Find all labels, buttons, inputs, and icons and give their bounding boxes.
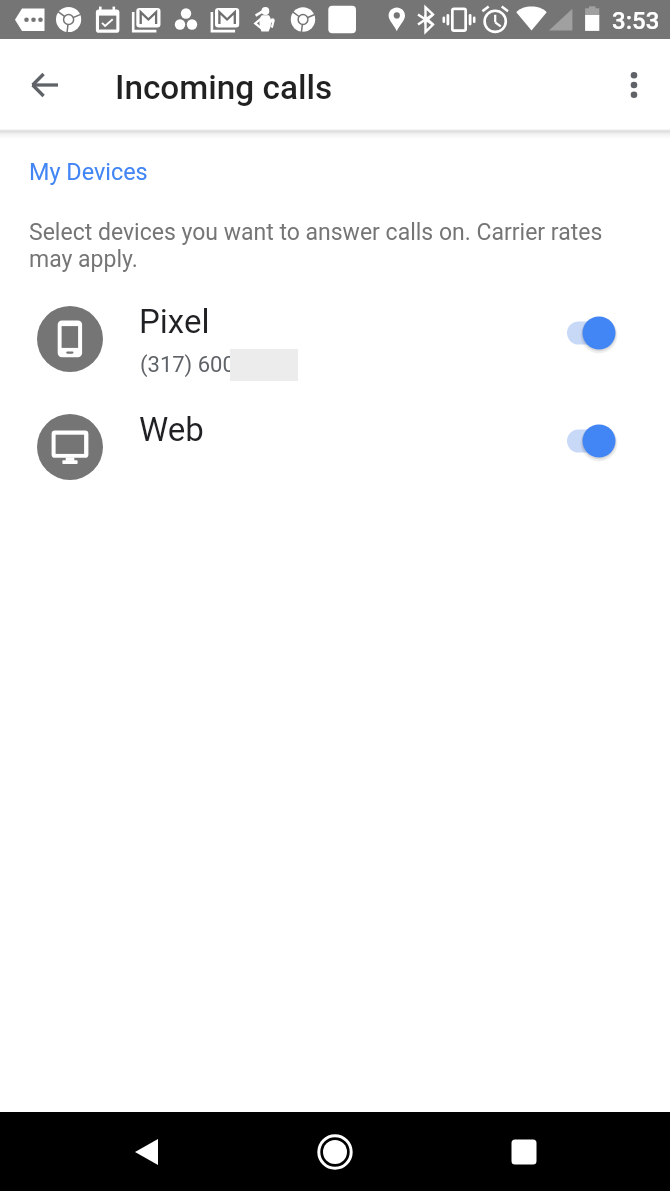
staticText: 3:53 — [612, 7, 660, 35]
staticText: Pixel — [139, 302, 210, 341]
staticText: My Devices — [29, 158, 148, 185]
staticText: Web — [139, 410, 204, 449]
button[interactable]: Toggle Web — [561, 410, 623, 472]
button[interactable]: Recent apps — [500, 1128, 548, 1176]
staticText: (317) 600 — [140, 352, 235, 378]
button[interactable]: Back — [122, 1128, 170, 1176]
button[interactable]: More options — [610, 61, 658, 109]
button[interactable]: Toggle Pixel — [561, 302, 623, 364]
button[interactable]: Navigate up — [21, 61, 69, 109]
button[interactable]: Home — [311, 1128, 359, 1176]
staticText: Incoming calls — [115, 68, 333, 107]
button[interactable]: Web — [0, 393, 670, 501]
staticText: Select devices you want to answer calls … — [29, 219, 649, 272]
button[interactable]: Pixel — [0, 285, 670, 393]
